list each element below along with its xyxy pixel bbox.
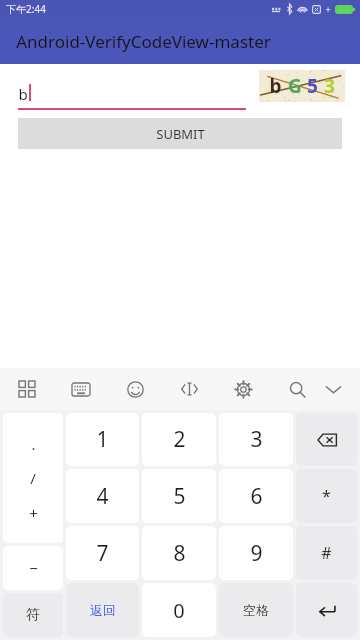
button[interactable]: Emoji (122, 376, 148, 402)
button[interactable]: SUBMIT (18, 118, 342, 149)
staticText: 4 (96, 482, 109, 511)
button[interactable]: 9 (219, 526, 293, 580)
button[interactable]: Keyboard layout (68, 376, 94, 402)
staticText: * (322, 485, 331, 507)
button[interactable]: Backspace (296, 413, 357, 466)
button[interactable]: 空格 (219, 583, 293, 637)
button[interactable]: 2 (142, 413, 216, 466)
button[interactable]: 8 (142, 526, 216, 580)
staticText: 下午2:44 (6, 2, 46, 16)
staticText: 空格 (243, 602, 269, 618)
button[interactable]: * (296, 469, 357, 523)
staticText: 1 (96, 425, 109, 454)
button[interactable]: . (3, 413, 63, 543)
staticText: 8 (173, 539, 186, 568)
staticText: # (321, 542, 332, 564)
staticText: 5 (173, 482, 186, 511)
staticText: 6 (250, 482, 263, 511)
button[interactable]: Hide keyboard (320, 376, 346, 402)
staticText: 符 (26, 606, 40, 624)
button[interactable]: 返回 (66, 583, 139, 637)
staticText: 3 (324, 73, 335, 99)
button[interactable]: b (18, 76, 246, 110)
staticText: Android-VerifyCodeView-master (16, 30, 271, 53)
staticText: 5 (307, 73, 318, 99)
staticText: 3 (250, 425, 263, 454)
staticText: b (269, 73, 282, 99)
button[interactable]: Refresh verification code (259, 70, 345, 102)
staticText: 7 (96, 539, 109, 568)
staticText: / (30, 468, 36, 488)
button[interactable]: 5 (142, 469, 216, 523)
button[interactable]: 6 (219, 469, 293, 523)
staticText: 0 (173, 597, 185, 624)
button[interactable]: 7 (66, 526, 139, 580)
button[interactable]: Settings (230, 376, 256, 402)
button[interactable]: # (296, 526, 357, 580)
button[interactable]: − (3, 546, 63, 590)
staticText: 返回 (90, 602, 116, 618)
button[interactable]: Text edit (176, 376, 202, 402)
button[interactable]: 4 (66, 469, 139, 523)
button[interactable]: 1 (66, 413, 139, 466)
staticText: 9 (250, 539, 263, 568)
button[interactable]: Search (284, 376, 310, 402)
staticText: 2 (173, 425, 186, 454)
button[interactable]: 符 (3, 593, 63, 637)
button[interactable]: Apps (14, 376, 40, 402)
button[interactable]: 0 (142, 583, 216, 637)
staticText: G (288, 73, 302, 99)
button[interactable]: 3 (219, 413, 293, 466)
staticText: . (31, 434, 36, 454)
staticText: − (29, 558, 38, 578)
staticText: SUBMIT (156, 125, 205, 143)
staticText: + (325, 3, 331, 15)
staticText: b (18, 84, 28, 104)
button[interactable]: Enter (296, 583, 357, 637)
staticText: + (29, 503, 38, 523)
